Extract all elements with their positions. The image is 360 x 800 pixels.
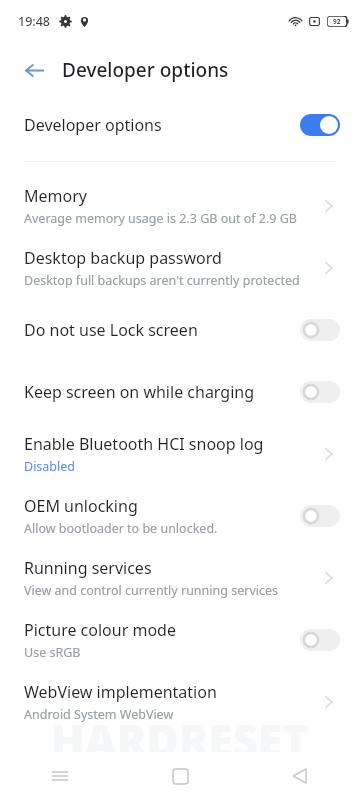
other: Toggle off xyxy=(300,629,340,651)
staticText: Disabled xyxy=(24,458,76,475)
button[interactable]: Keep screen on while charging xyxy=(0,361,360,423)
staticText: WebView implementation xyxy=(24,681,217,703)
button[interactable]: OEM unlocking xyxy=(0,485,360,547)
staticText: OEM unlocking xyxy=(24,495,138,517)
staticText: View and control currently running servi… xyxy=(24,582,279,599)
staticText: Do not use Lock screen xyxy=(24,319,198,341)
other: Toggle off xyxy=(300,381,340,403)
other: Toggle on xyxy=(300,114,340,136)
staticText: Enable Bluetooth HCI snoop log xyxy=(24,433,264,455)
staticText: Allow bootloader to be unlocked. xyxy=(24,520,218,537)
staticText: HARDRESET xyxy=(51,710,309,770)
staticText: Memory xyxy=(24,185,87,207)
staticText: 92 xyxy=(333,17,341,26)
staticText: Use sRGB xyxy=(24,644,81,661)
staticText: Average memory usage is 2.3 GB out of 2.… xyxy=(24,210,297,227)
button[interactable]: Recent apps xyxy=(0,752,120,800)
other: Open xyxy=(318,257,340,279)
staticText: Picture colour mode xyxy=(24,619,176,641)
staticText: Developer options xyxy=(62,57,229,83)
button[interactable]: Desktop backup password xyxy=(0,237,360,299)
button[interactable]: Running services xyxy=(0,547,360,609)
button[interactable]: Back xyxy=(14,50,54,90)
staticText: Desktop backup password xyxy=(24,247,222,269)
other: Toggle off xyxy=(300,319,340,341)
button[interactable]: WebView implementation xyxy=(0,671,360,733)
other: Toggle off xyxy=(300,505,340,527)
button[interactable]: Picture colour mode xyxy=(0,609,360,671)
other: Open xyxy=(318,691,340,713)
button[interactable]: Developer options xyxy=(0,98,360,152)
other: Open xyxy=(318,567,340,589)
staticText: Android System WebView xyxy=(24,706,174,723)
button[interactable]: Memory xyxy=(0,175,360,237)
other: Open xyxy=(318,195,340,217)
staticText: Running services xyxy=(24,557,152,579)
staticText: Developer options xyxy=(24,114,300,136)
button[interactable]: Home xyxy=(120,752,240,800)
button[interactable]: Enable Bluetooth HCI snoop log xyxy=(0,423,360,485)
button[interactable]: Back xyxy=(240,752,360,800)
staticText: 19:48 xyxy=(18,13,51,30)
staticText: Keep screen on while charging xyxy=(24,381,255,403)
staticText: Desktop full backups aren't currently pr… xyxy=(24,272,300,289)
button[interactable]: Do not use Lock screen xyxy=(0,299,360,361)
other: Open xyxy=(318,443,340,465)
